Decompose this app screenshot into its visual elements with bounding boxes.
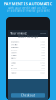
staticText: 12.00	[41, 57, 45, 59]
staticText: 90.00	[41, 55, 45, 56]
staticText: 240.00	[40, 44, 45, 46]
staticText: 120.00	[40, 41, 45, 43]
staticText: 46.04	[41, 65, 45, 66]
staticText: Design work	[11, 41, 20, 43]
staticText: Discount	[11, 67, 17, 69]
button[interactable]: Check out	[11, 93, 45, 98]
staticText: Consulting	[11, 44, 18, 46]
staticText: Total due	[11, 72, 17, 74]
staticText: PAYMENT IS AUTOMATIC	[3, 1, 52, 6]
staticText: Check out	[21, 94, 35, 97]
staticText: 35.00	[41, 46, 45, 48]
staticText: Delivery	[11, 57, 17, 59]
staticText: with your credit card on file,	[8, 6, 48, 10]
staticText: Order Receipt	[18, 35, 38, 38]
staticText: 18.50	[41, 49, 45, 51]
staticText: or a detailed invoice gets sent	[6, 9, 49, 12]
staticText: Hosting plan	[11, 46, 19, 48]
staticText: Subtotal	[11, 62, 16, 64]
staticText: Pay now	[40, 33, 46, 34]
staticText: 60.00	[41, 52, 45, 54]
staticText: Licenses	[11, 49, 18, 51]
staticText: Training	[11, 55, 17, 56]
staticText: Your invoice	[10, 32, 27, 35]
staticText: Support	[11, 52, 17, 54]
staticText: Tax	[11, 65, 14, 66]
staticText: -25.00	[41, 67, 45, 69]
